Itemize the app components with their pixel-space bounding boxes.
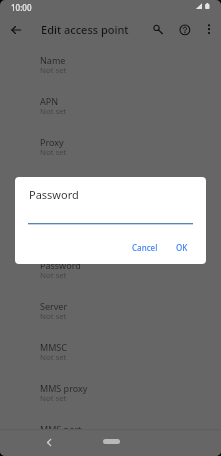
staticText: 10:00 bbox=[11, 2, 32, 13]
button[interactable]: MMS proxy bbox=[0, 378, 221, 419]
button[interactable]: Back bbox=[38, 432, 58, 452]
staticText: MMS port bbox=[40, 423, 82, 435]
button[interactable]: MMSC bbox=[0, 337, 221, 378]
staticText: Not set bbox=[40, 393, 67, 404]
button[interactable]: More options bbox=[198, 19, 219, 40]
staticText: OK bbox=[176, 242, 188, 253]
button[interactable]: Port bbox=[0, 173, 221, 214]
button[interactable]: Proxy bbox=[0, 132, 221, 173]
staticText: Password bbox=[29, 187, 79, 202]
button[interactable]: MMS port bbox=[0, 419, 221, 456]
staticText: Edit access point bbox=[41, 22, 129, 37]
button[interactable]: Name bbox=[0, 50, 221, 91]
staticText: Not set bbox=[40, 270, 67, 281]
button[interactable]: OK bbox=[171, 238, 193, 257]
staticText: Not set bbox=[40, 434, 67, 445]
staticText: Not set bbox=[40, 352, 67, 363]
button[interactable]: APN bbox=[0, 91, 221, 132]
staticText: Proxy bbox=[40, 136, 64, 148]
button[interactable]: Home bbox=[103, 439, 120, 444]
staticText: Not set bbox=[40, 311, 67, 322]
button[interactable]: Password bbox=[0, 255, 221, 296]
staticText: MMS proxy bbox=[40, 382, 88, 394]
staticText: Not set bbox=[40, 65, 67, 76]
staticText: MMSC bbox=[40, 341, 67, 353]
staticText: Not set bbox=[40, 188, 67, 199]
button[interactable]: Server bbox=[0, 296, 221, 337]
staticText: Not set bbox=[40, 147, 67, 158]
staticText: Password bbox=[40, 259, 81, 271]
staticText: Server bbox=[40, 300, 68, 312]
staticText: Not set bbox=[40, 106, 67, 117]
button[interactable]: Search bbox=[145, 18, 168, 41]
button[interactable]: Cancel bbox=[127, 238, 163, 257]
staticText: Name bbox=[40, 54, 66, 66]
button[interactable]: Help bbox=[173, 18, 196, 41]
staticText: APN bbox=[40, 95, 59, 107]
staticText: Cancel bbox=[132, 242, 158, 253]
button[interactable]: Username bbox=[0, 214, 221, 255]
button[interactable]: Navigate up bbox=[4, 18, 28, 42]
staticText: Username bbox=[40, 218, 84, 230]
